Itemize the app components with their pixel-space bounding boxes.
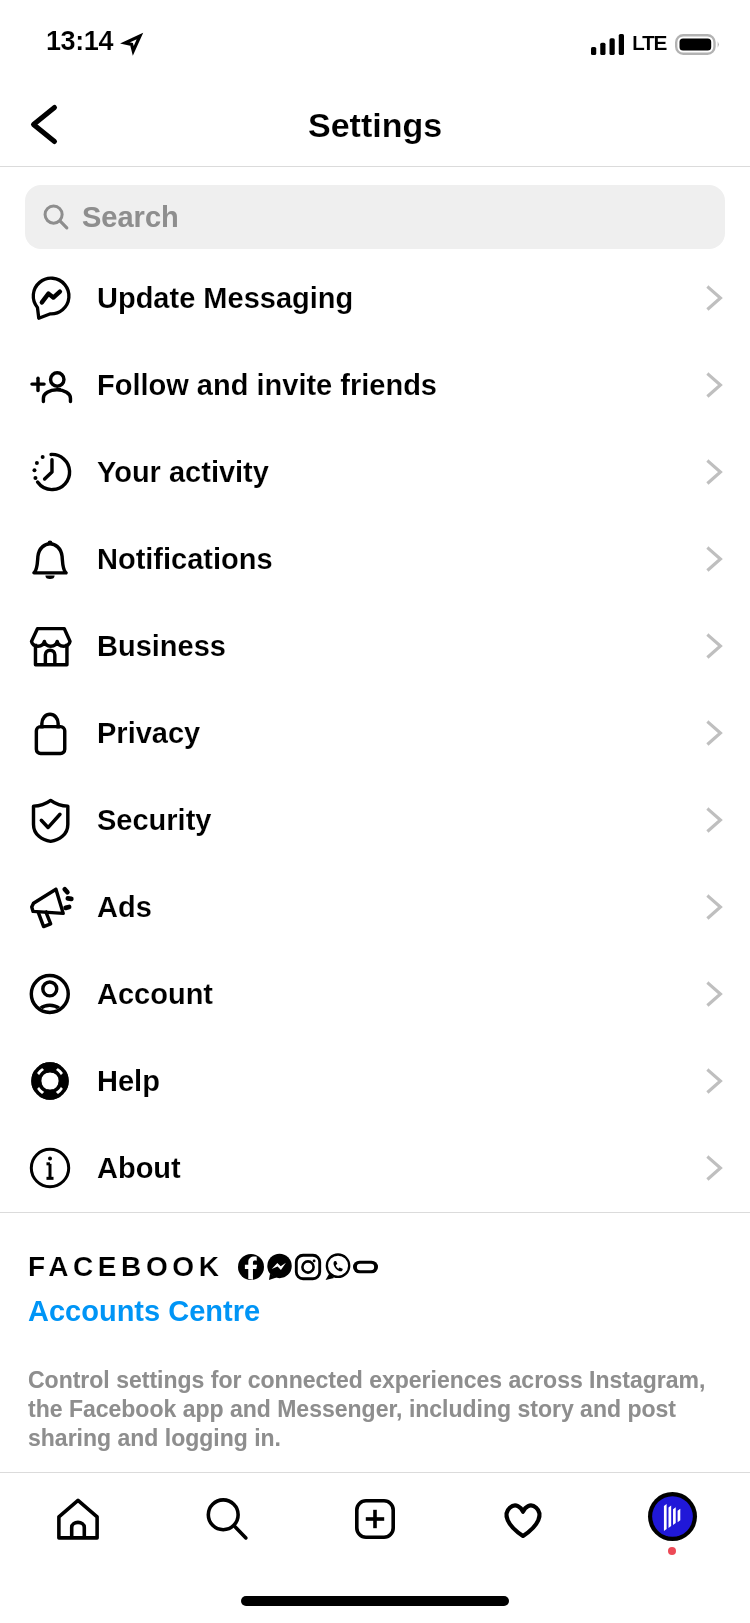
staticText: Accounts Centre [28, 1295, 261, 1327]
button[interactable]: Business [0, 602, 750, 689]
button[interactable]: Activity [453, 1473, 593, 1565]
staticText: Business [97, 630, 226, 662]
staticText: Update Messaging [97, 282, 354, 314]
staticText: Account [97, 978, 213, 1010]
staticText: FACEBOOK [28, 1251, 224, 1282]
button[interactable]: Ads [0, 863, 750, 950]
staticText: Follow and invite friends [97, 369, 437, 401]
button[interactable]: Back [0, 83, 88, 166]
button[interactable]: Notifications [0, 515, 750, 602]
button[interactable]: Create [305, 1473, 445, 1565]
button[interactable]: About [0, 1124, 750, 1211]
button[interactable]: Help [0, 1037, 750, 1124]
button[interactable]: Search [157, 1473, 297, 1565]
button[interactable]: Update Messaging [0, 254, 750, 341]
button[interactable]: Privacy [0, 689, 750, 776]
staticText: Settings [308, 106, 443, 144]
button[interactable]: Accounts Centre [28, 1295, 261, 1327]
button[interactable]: Home [8, 1473, 148, 1565]
staticText: Control settings for connected experienc… [28, 1367, 746, 1451]
staticText: Privacy [97, 717, 201, 749]
button[interactable]: Follow and invite friends [0, 341, 750, 428]
staticText: Help [97, 1065, 160, 1097]
staticText: Your activity [97, 456, 269, 488]
button[interactable]: Account [0, 950, 750, 1037]
staticText: LTE [632, 31, 667, 54]
staticText: Notifications [97, 543, 273, 575]
button[interactable]: Security [0, 776, 750, 863]
button[interactable]: Search [25, 185, 725, 249]
staticText: Security [97, 804, 212, 836]
staticText: 13:14 [46, 26, 114, 56]
staticText: About [97, 1152, 181, 1184]
button[interactable]: Your activity [0, 428, 750, 515]
staticText: Search [82, 201, 179, 233]
staticText: Ads [97, 891, 152, 923]
button[interactable]: Profile [602, 1473, 742, 1565]
